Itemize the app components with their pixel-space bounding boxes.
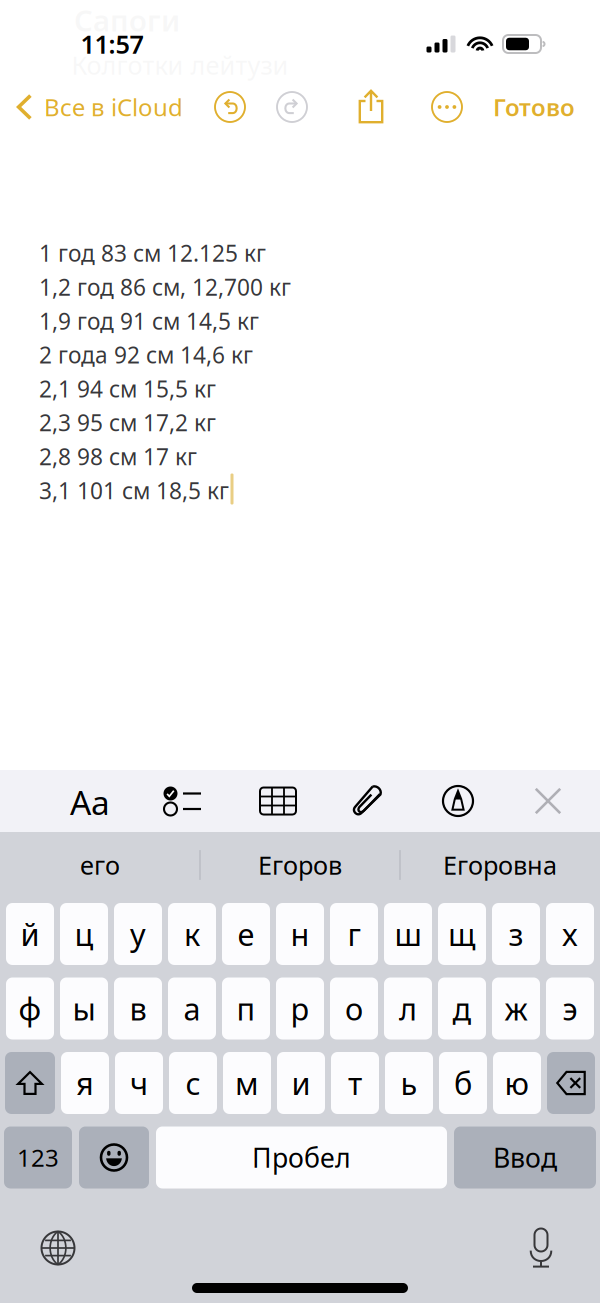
staticText: 2,3 95 см 17,2 кг bbox=[39, 407, 216, 438]
staticText: х bbox=[562, 914, 578, 954]
button[interactable]: ш bbox=[384, 903, 432, 965]
staticText: б bbox=[454, 1063, 472, 1103]
button[interactable]: н bbox=[276, 903, 324, 965]
staticText: у bbox=[130, 914, 146, 954]
button[interactable]: д bbox=[438, 977, 486, 1039]
staticText: п bbox=[236, 988, 255, 1029]
button[interactable]: г bbox=[330, 903, 378, 965]
button[interactable]: Егоровна bbox=[400, 836, 599, 894]
button[interactable]: Backspace bbox=[547, 1052, 595, 1114]
staticText: з bbox=[508, 914, 523, 954]
button[interactable]: о bbox=[330, 977, 378, 1039]
button[interactable]: Все в iCloud bbox=[0, 82, 191, 132]
button[interactable]: Undo bbox=[214, 91, 246, 123]
button[interactable]: его bbox=[0, 836, 199, 894]
staticText: Егоровна bbox=[443, 848, 557, 882]
staticText: о bbox=[345, 988, 363, 1029]
button[interactable]: т bbox=[331, 1052, 379, 1114]
staticText: а bbox=[183, 988, 200, 1029]
staticText: Готово bbox=[493, 91, 575, 123]
button[interactable]: Next keyboard bbox=[40, 1230, 75, 1265]
button[interactable]: у bbox=[114, 903, 162, 965]
staticText: ш bbox=[394, 914, 421, 954]
button[interactable]: л bbox=[384, 977, 432, 1039]
staticText: Колготки лейтузи bbox=[71, 48, 288, 82]
staticText: и bbox=[291, 1063, 310, 1103]
staticText: 1,2 год 86 см, 12,700 кг bbox=[39, 272, 291, 302]
button[interactable]: ь bbox=[385, 1052, 433, 1114]
button[interactable]: и bbox=[277, 1052, 325, 1114]
staticText: Сапоги bbox=[74, 0, 180, 39]
staticText: 2 года 92 см 14,6 кг bbox=[39, 340, 253, 370]
staticText: м bbox=[235, 1063, 259, 1103]
staticText: ю bbox=[504, 1063, 529, 1103]
button[interactable]: ц bbox=[60, 903, 108, 965]
button[interactable]: к bbox=[168, 903, 216, 965]
button[interactable]: 123 bbox=[4, 1126, 72, 1188]
staticText: р bbox=[290, 988, 309, 1029]
staticText: д bbox=[452, 988, 471, 1029]
button[interactable]: ж bbox=[492, 977, 540, 1039]
staticText: ж bbox=[504, 988, 527, 1029]
staticText: к bbox=[184, 914, 200, 954]
button[interactable]: Dictate bbox=[528, 1227, 554, 1267]
staticText: щ bbox=[448, 914, 476, 954]
staticText: ф bbox=[18, 988, 41, 1029]
staticText: ы bbox=[72, 988, 95, 1029]
button[interactable]: Егоров bbox=[200, 836, 399, 894]
button[interactable]: Redo bbox=[276, 91, 308, 123]
button[interactable]: я bbox=[61, 1052, 109, 1114]
button[interactable]: с bbox=[169, 1052, 217, 1114]
button[interactable]: щ bbox=[438, 903, 486, 965]
staticText: 2,8 98 см 17 кг bbox=[39, 441, 197, 471]
button[interactable]: More options bbox=[431, 91, 463, 123]
staticText: ч bbox=[130, 1063, 148, 1103]
button[interactable]: ч bbox=[115, 1052, 163, 1114]
staticText: 123 bbox=[17, 1142, 59, 1173]
staticText: г bbox=[347, 914, 360, 954]
staticText: т bbox=[348, 1063, 362, 1103]
staticText: 2,1 94 см 15,5 кг bbox=[39, 374, 216, 404]
button[interactable]: р bbox=[276, 977, 324, 1039]
staticText: Все в iCloud bbox=[44, 91, 183, 123]
button[interactable]: а bbox=[168, 977, 216, 1039]
button[interactable]: м bbox=[223, 1052, 271, 1114]
staticText: л bbox=[399, 988, 417, 1029]
button[interactable]: й bbox=[6, 903, 54, 965]
button[interactable]: Пробел bbox=[156, 1126, 447, 1188]
button[interactable]: Checklist bbox=[163, 785, 201, 817]
staticText: Aa bbox=[70, 780, 110, 824]
staticText: Егоров bbox=[258, 848, 342, 882]
staticText: 1 год 83 см 12.125 кг bbox=[39, 238, 266, 268]
staticText: 1,9 год 91 см 14,5 кг bbox=[39, 306, 259, 336]
button[interactable]: Emoji bbox=[79, 1126, 149, 1188]
button[interactable]: ы bbox=[60, 977, 108, 1039]
button[interactable]: Готово bbox=[493, 82, 600, 132]
button[interactable]: Markup bbox=[442, 785, 474, 817]
button[interactable]: з bbox=[492, 903, 540, 965]
staticText: е bbox=[237, 914, 254, 954]
button[interactable]: э bbox=[546, 977, 594, 1039]
staticText: Ввод bbox=[493, 1140, 557, 1175]
button[interactable]: Close keyboard bbox=[534, 787, 561, 814]
staticText: 3,1 101 см 18,5 кг bbox=[39, 475, 229, 505]
button[interactable]: б bbox=[439, 1052, 487, 1114]
button[interactable]: е bbox=[222, 903, 270, 965]
button[interactable]: Attachment bbox=[353, 784, 383, 818]
button[interactable]: х bbox=[546, 903, 594, 965]
button[interactable]: Shift bbox=[5, 1052, 55, 1114]
button[interactable]: ю bbox=[493, 1052, 541, 1114]
staticText: с bbox=[185, 1063, 200, 1103]
staticText: й bbox=[20, 914, 39, 954]
button[interactable]: Text format bbox=[60, 780, 120, 824]
staticText: его bbox=[80, 848, 120, 882]
staticText: я bbox=[76, 1063, 94, 1103]
button[interactable]: ф bbox=[6, 977, 54, 1039]
button[interactable]: Table bbox=[259, 785, 297, 817]
staticText: в bbox=[129, 988, 146, 1029]
button[interactable]: в bbox=[114, 977, 162, 1039]
button[interactable]: Ввод bbox=[454, 1126, 596, 1188]
staticText: Пробел bbox=[252, 1140, 351, 1175]
button[interactable]: п bbox=[222, 977, 270, 1039]
button[interactable]: Share bbox=[358, 89, 384, 125]
